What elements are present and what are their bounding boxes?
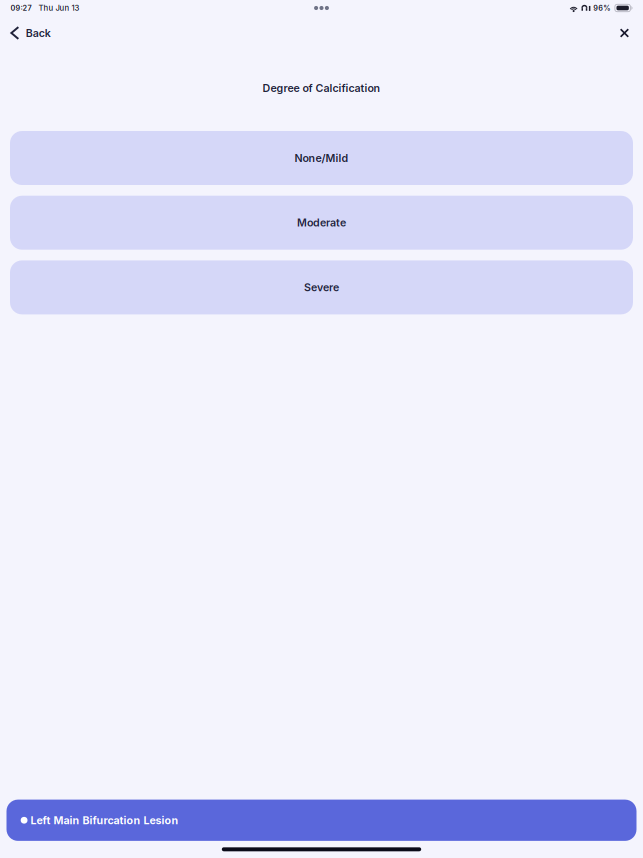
- button[interactable]: Back: [0, 19, 63, 47]
- button[interactable]: Severe: [10, 260, 633, 314]
- staticText: 96%: [593, 4, 610, 12]
- staticText: Severe: [304, 281, 339, 294]
- staticText: None/Mild: [294, 151, 348, 164]
- staticText: Moderate: [297, 216, 346, 229]
- staticText: Back: [26, 26, 51, 39]
- button[interactable]: Close: [609, 18, 643, 48]
- staticText: 09:27: [10, 4, 31, 12]
- staticText: Thu Jun 13: [38, 3, 79, 13]
- button[interactable]: None/Mild: [10, 131, 633, 185]
- button[interactable]: Left Main Bifurcation Lesion: [6, 800, 636, 841]
- staticText: Degree of Calcification: [262, 81, 380, 94]
- staticText: Left Main Bifurcation Lesion: [30, 814, 178, 827]
- button[interactable]: Moderate: [10, 196, 633, 250]
